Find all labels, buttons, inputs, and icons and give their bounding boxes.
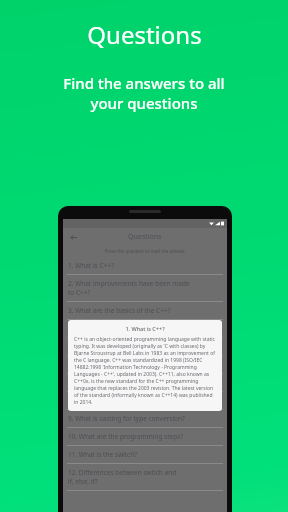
staticText: 1. What is C++? (74, 325, 216, 332)
staticText: 11. What is the switch? (68, 450, 138, 459)
staticText: 7. (68, 378, 76, 387)
button[interactable]: 1. What is C++? (63, 257, 227, 275)
staticText: Press the question to read the answer. (63, 248, 227, 254)
button[interactable]: 3. What are the basics of the C++? (63, 302, 227, 320)
button[interactable]: 4. (63, 320, 227, 338)
button[interactable]: 8. Why is syntax very important? (63, 392, 227, 410)
staticText: 6. (68, 360, 76, 369)
staticText: 8. Why is syntax very important? (68, 396, 167, 405)
staticText: 2. What improvements have been made to C… (68, 279, 190, 297)
staticText: C++ is an object-oriented programming la… (74, 336, 216, 406)
staticText: Questions (87, 18, 202, 51)
button[interactable]: 11. What is the switch? (63, 446, 227, 464)
button[interactable]: 7. (63, 374, 227, 392)
button[interactable]: Back (67, 231, 79, 243)
button[interactable]: 10. What are the programming steps? (63, 428, 227, 446)
staticText: Find the answers to all your questions (63, 73, 225, 113)
button[interactable]: 6. (63, 356, 227, 374)
staticText: Questions (128, 232, 162, 242)
staticText: 10. What are the programming steps? (68, 432, 184, 441)
button[interactable]: 5. (63, 338, 227, 356)
staticText: 9. What is casting for type conversion? (68, 414, 185, 423)
staticText: 5. (68, 342, 76, 351)
button[interactable]: 9. What is casting for type conversion? (63, 410, 227, 428)
staticText: 1. What is C++? (68, 261, 114, 270)
staticText: 3. What are the basics of the C++? (68, 306, 171, 315)
staticText: 12. Differences between swtich and if, e… (68, 468, 177, 486)
button[interactable]: 2. What improvements have been made to C… (63, 275, 227, 302)
button[interactable]: 12. Differences between swtich and if, e… (63, 464, 227, 491)
button[interactable]: 1. What is C++? (68, 320, 222, 411)
